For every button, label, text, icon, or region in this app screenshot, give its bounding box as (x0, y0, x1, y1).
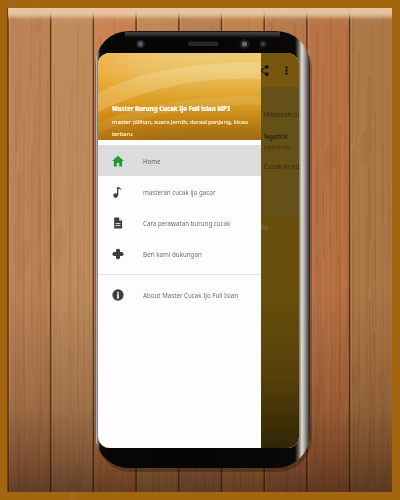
staticText: About Master Cucak Ijo Full Isian (143, 291, 239, 299)
button[interactable]: Ngetrik (98, 132, 299, 162)
button[interactable]: masteran cucak ijo gacor (98, 176, 261, 207)
staticText: Masteran cucak ijo gacor durasi panjang (264, 110, 299, 118)
button[interactable]: Cucak ijo ngentrok durasi 5 mnt (98, 162, 299, 219)
staticText: Master Burung Cucak Ijo Full isian MP3 (112, 104, 231, 112)
staticText: Master Cucak Ijo (108, 65, 172, 76)
staticText: Beri kami dukungan (143, 250, 202, 258)
button[interactable]: Beri kami dukungan (98, 238, 261, 269)
button[interactable]: Masteran cucak ijo gacor durasi panjang (98, 110, 299, 132)
staticText: Home (143, 157, 161, 165)
button[interactable]: About Master Cucak Ijo Full Isian (98, 279, 261, 310)
button[interactable]: More options (275, 59, 297, 81)
button[interactable]: Home (98, 145, 261, 176)
button[interactable]: Share (251, 58, 275, 82)
staticText: Ngetrik (264, 132, 288, 140)
staticText: ngentrok (264, 143, 290, 151)
staticText: Cara perawatan burung cucak (143, 219, 231, 227)
button[interactable]: Cara perawatan burung cucak (98, 207, 261, 238)
staticText: masteran cucak ijo gacor (143, 188, 216, 196)
staticText: Cucak ijo ngentrok durasi 5 mnt (264, 162, 299, 170)
staticText: Xo (260, 223, 269, 233)
staticText: master pilihan, suara jernih, durasi pan… (112, 118, 248, 138)
